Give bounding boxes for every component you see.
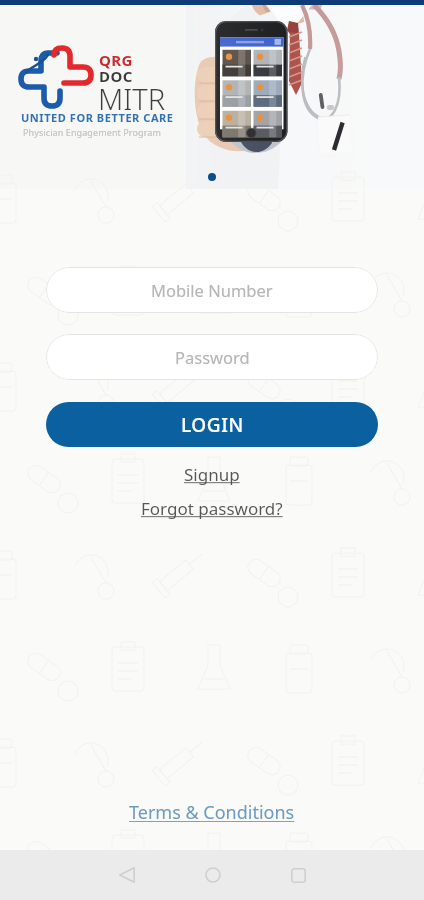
button[interactable]: Password (46, 334, 378, 380)
staticText: UNITED FOR BETTER CARE (21, 110, 174, 125)
button[interactable]: Recents (274, 851, 322, 899)
staticText: Terms & Conditions (129, 800, 295, 825)
staticText: Signup (184, 463, 240, 486)
staticText: MITR (98, 79, 166, 118)
button[interactable]: Signup (174, 460, 250, 489)
button[interactable]: LOGIN (46, 402, 378, 447)
button[interactable]: Forgot password? (131, 494, 293, 523)
staticText: LOGIN (181, 412, 244, 438)
button[interactable]: Back (103, 851, 151, 899)
staticText: Password (175, 346, 250, 368)
staticText: Physician Engagement Program (23, 126, 161, 138)
staticText: Mobile Number (151, 279, 273, 301)
button[interactable]: Mobile Number (46, 267, 378, 313)
button[interactable]: Home (189, 851, 237, 899)
button[interactable]: Terms & Conditions (117, 797, 307, 828)
staticText: Forgot password? (141, 497, 283, 520)
staticText: DOC (99, 66, 133, 86)
staticText: QRG (99, 50, 133, 70)
